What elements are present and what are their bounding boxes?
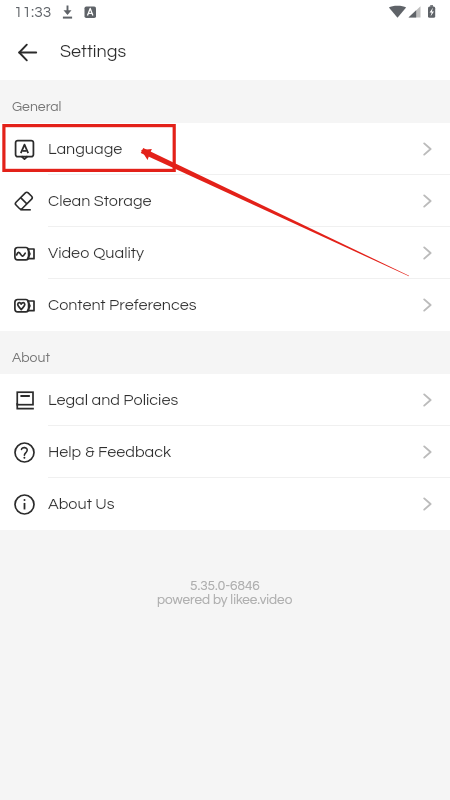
staticText: Language (48, 141, 123, 158)
button[interactable]: Clean Storage (0, 175, 450, 227)
button[interactable]: Content Preferences (0, 279, 450, 331)
staticText: About Us (48, 496, 115, 513)
button[interactable]: Back (3, 28, 51, 76)
staticText: 11:33 (14, 4, 52, 20)
staticText: Clean Storage (48, 193, 152, 210)
staticText: powered by likee.video (157, 593, 293, 607)
button[interactable]: Video Quality (0, 227, 450, 279)
staticText: Content Preferences (48, 297, 197, 314)
staticText: 5.35.0-6846 (190, 579, 260, 593)
button[interactable]: About Us (0, 478, 450, 530)
staticText: Video Quality (48, 245, 145, 262)
staticText: Settings (60, 42, 127, 61)
button[interactable]: Legal and Policies (0, 374, 450, 426)
staticText: Help & Feedback (48, 444, 172, 461)
staticText: General (12, 100, 62, 114)
staticText: About (12, 351, 50, 365)
staticText: Legal and Policies (48, 392, 179, 409)
button[interactable]: Language (0, 123, 450, 175)
button[interactable]: Help & Feedback (0, 426, 450, 478)
